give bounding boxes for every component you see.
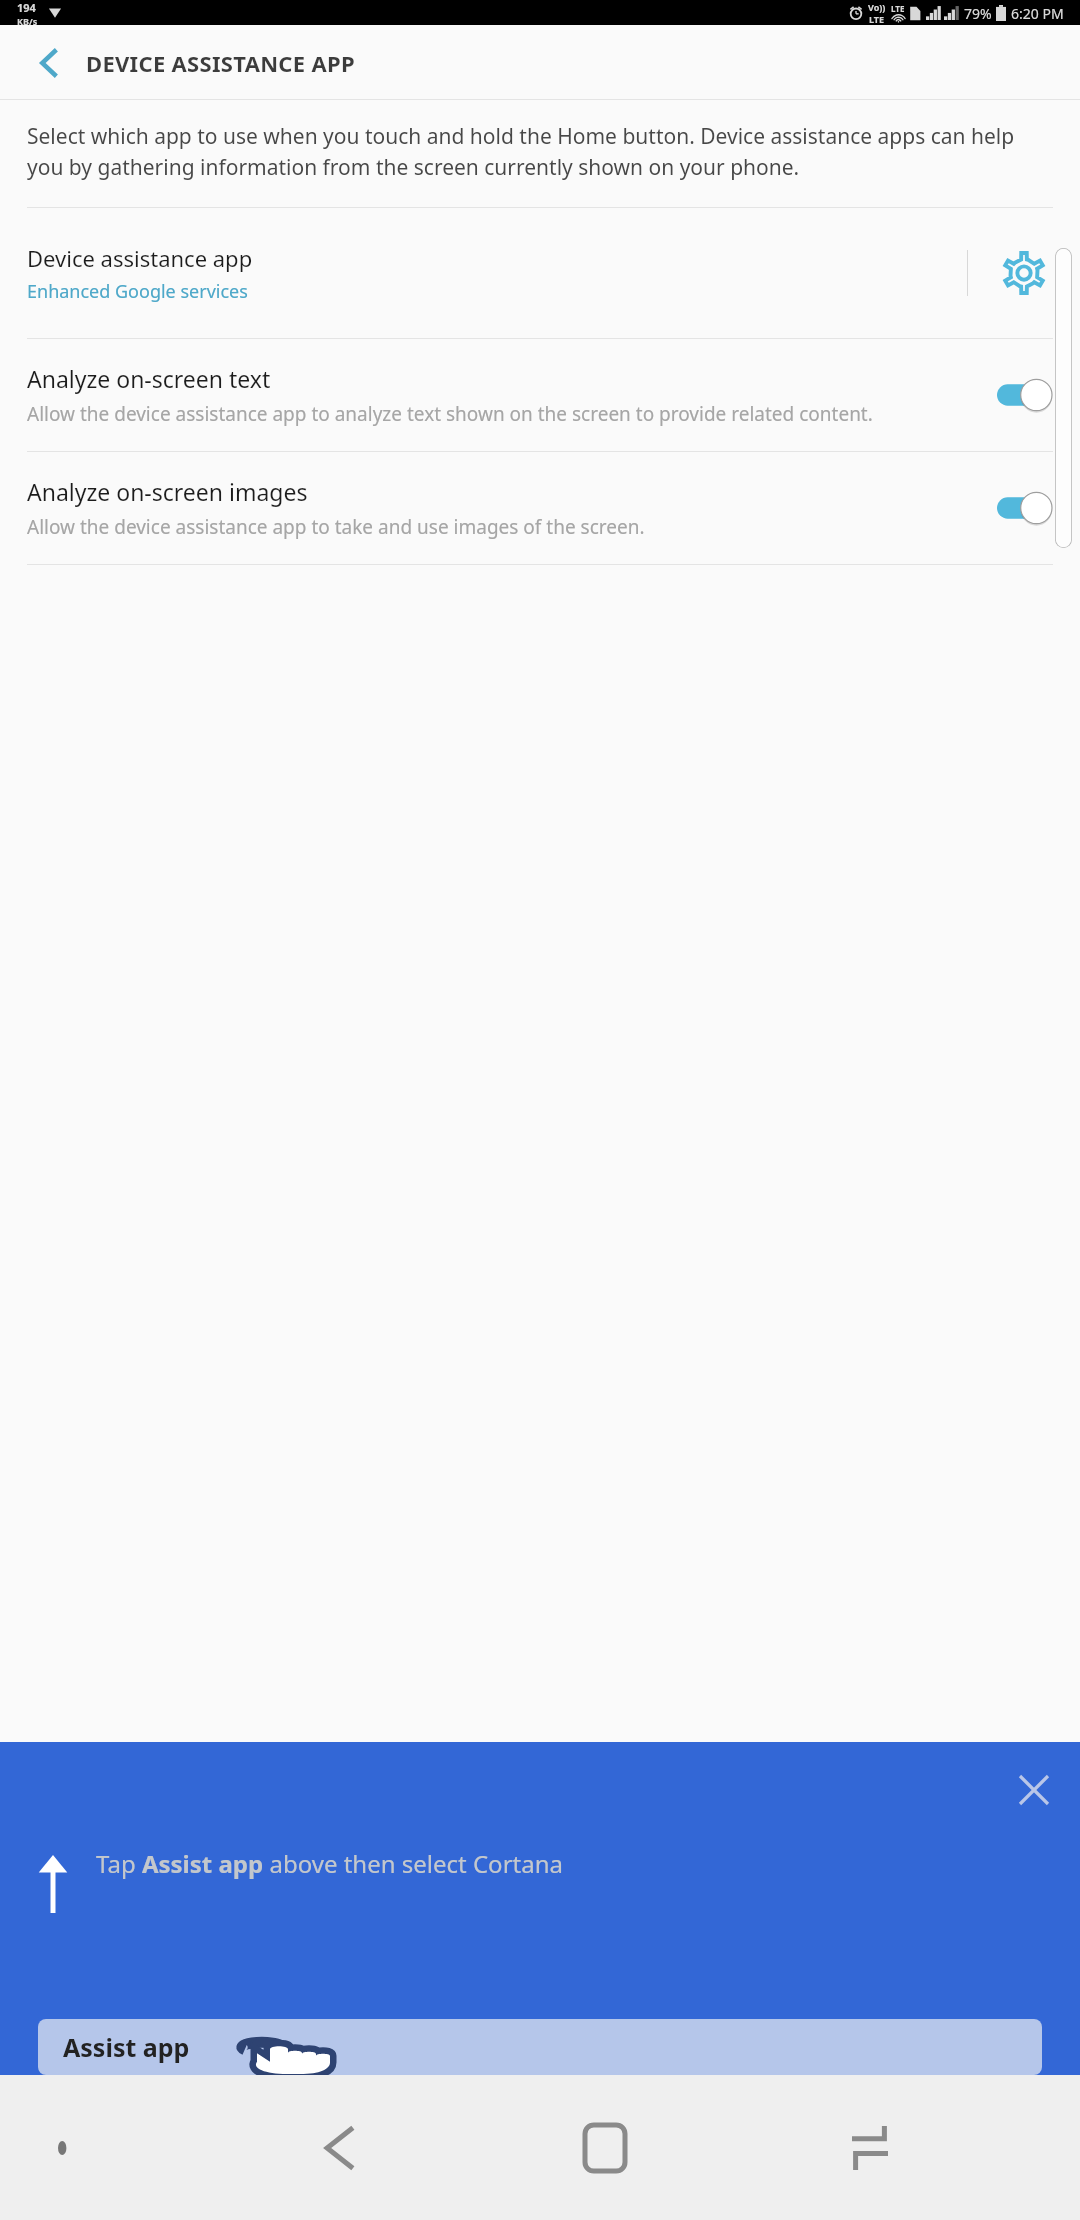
staticText: Device assistance app [27, 243, 253, 273]
button[interactable]: Settings [968, 208, 1080, 338]
button[interactable]: Assist app [38, 2019, 1042, 2075]
button[interactable]: Device assistance app [0, 208, 1080, 338]
staticText: KB/s [17, 15, 38, 25]
staticText: Allow the device assistance app to analy… [27, 401, 873, 427]
staticText: 194 [17, 0, 36, 15]
staticText: Vo)) [868, 1, 886, 13]
button[interactable]: Back [18, 32, 80, 94]
staticText: Allow the device assistance app to take … [27, 514, 645, 540]
button[interactable]: Close [1008, 1764, 1060, 1816]
staticText: LTE [891, 3, 905, 14]
button[interactable]: Home [550, 2093, 660, 2203]
staticText: Enhanced Google services [27, 279, 248, 304]
staticText: DEVICE ASSISTANCE APP [86, 48, 355, 78]
staticText: Select which app to use when you touch a… [27, 122, 1053, 181]
button[interactable]: Back [285, 2093, 395, 2203]
staticText: 79% [964, 4, 992, 23]
button[interactable]: Toggle Analyze on-screen images [970, 480, 1080, 536]
button[interactable]: Recents [815, 2093, 925, 2203]
button[interactable]: Analyze on-screen images [0, 452, 1080, 564]
staticText: Analyze on-screen images [27, 476, 308, 507]
button[interactable]: Toggle Analyze on-screen text [970, 367, 1080, 423]
staticText: Assist app [63, 2030, 190, 2064]
staticText: 6:20 PM [1011, 4, 1064, 23]
staticText: LTE [869, 13, 885, 25]
staticText: Tap Assist app above then select Cortana [96, 1847, 563, 1880]
button[interactable]: Analyze on-screen text [0, 339, 1080, 451]
staticText: Analyze on-screen text [27, 363, 271, 394]
